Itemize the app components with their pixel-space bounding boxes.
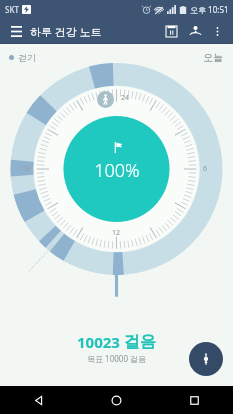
staticText: 18 <box>22 164 31 174</box>
button[interactable]: 오늘 <box>203 51 223 64</box>
staticText: 오늘 <box>203 51 223 64</box>
button[interactable]: Back <box>0 386 77 414</box>
staticText: SKT <box>5 4 19 15</box>
staticText: 24 <box>121 93 130 103</box>
staticText: 목표 10000 걸음 <box>87 353 147 364</box>
button[interactable]: More actions <box>189 342 223 376</box>
staticText: 100% <box>94 158 140 183</box>
staticText: 6 <box>203 164 208 174</box>
button[interactable]: 걷기 <box>9 52 36 63</box>
staticText: 오후 10:51 <box>190 4 229 15</box>
button[interactable]: More options <box>207 21 227 41</box>
button[interactable]: Calendar <box>160 20 182 42</box>
staticText: 걷기 <box>18 52 36 63</box>
button[interactable]: Open navigation drawer <box>6 21 26 41</box>
staticText: 하루 건강 노트 <box>30 24 102 39</box>
staticText: 10023 <box>77 332 124 352</box>
button[interactable]: Home <box>77 386 155 414</box>
staticText: 12 <box>112 228 121 238</box>
staticText: 걸음 <box>124 332 156 352</box>
button[interactable]: Recent apps <box>155 386 233 414</box>
button[interactable]: Profile <box>184 20 206 42</box>
